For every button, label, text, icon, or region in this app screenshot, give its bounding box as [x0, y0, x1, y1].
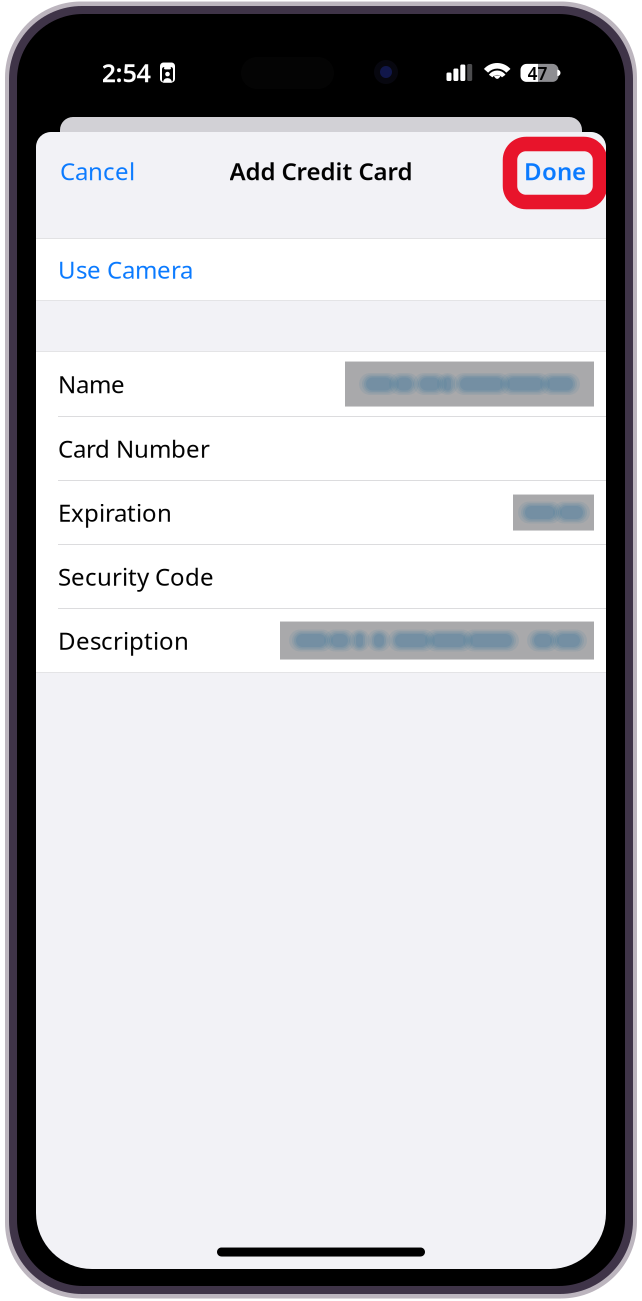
- button[interactable]: Security Code: [36, 545, 606, 608]
- staticText: Expiration: [58, 497, 172, 528]
- staticText: 47: [527, 62, 547, 85]
- staticText: Add Credit Card: [229, 155, 412, 187]
- staticText: Done: [524, 155, 586, 187]
- staticText: Card Number: [58, 433, 210, 464]
- button[interactable]: Expiration: [36, 481, 606, 544]
- staticText: Cancel: [60, 155, 135, 187]
- staticText: 2:54: [101, 56, 150, 89]
- staticText: Name: [58, 368, 125, 400]
- button[interactable]: Cancel: [50, 143, 145, 199]
- staticText: Description: [58, 625, 189, 656]
- staticText: Security Code: [58, 561, 214, 592]
- button[interactable]: Description: [36, 609, 606, 672]
- button[interactable]: Use Camera: [36, 239, 606, 300]
- staticText: Use Camera: [58, 254, 193, 285]
- button[interactable]: Card Number: [36, 417, 606, 480]
- button[interactable]: Done: [510, 142, 600, 200]
- button[interactable]: Name: [36, 352, 606, 416]
